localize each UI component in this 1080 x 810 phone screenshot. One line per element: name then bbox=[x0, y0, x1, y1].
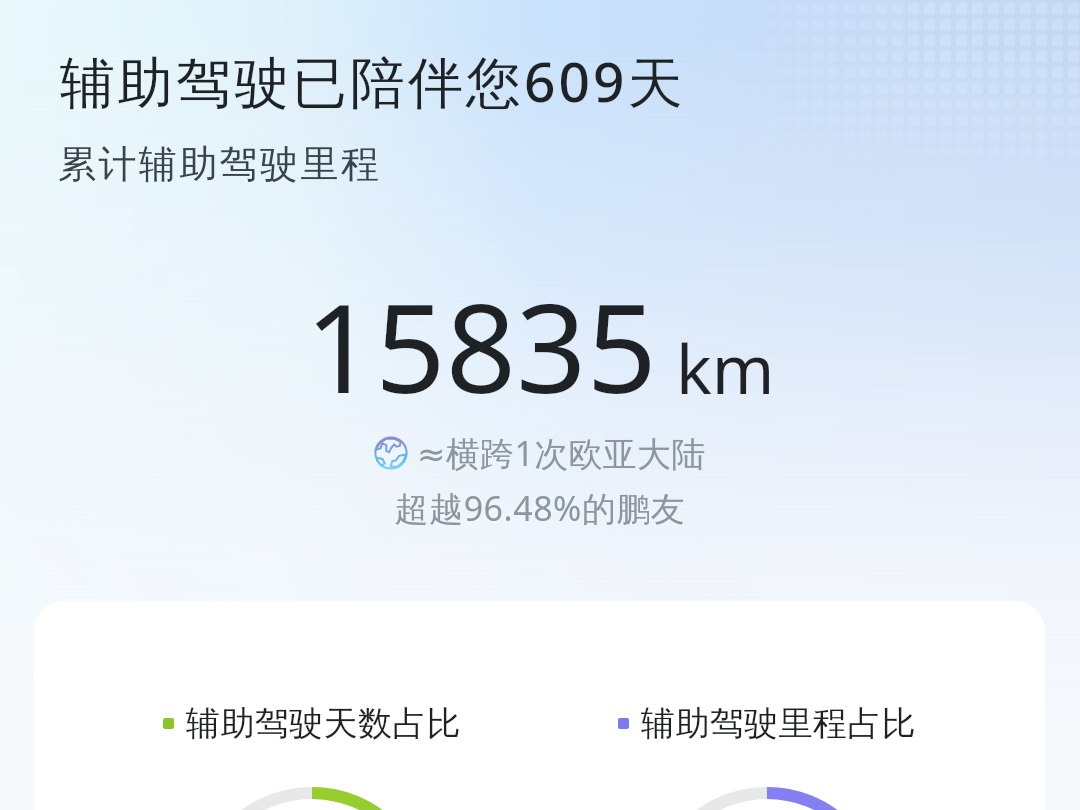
staticText: 辅助驾驶里程占比 bbox=[641, 702, 917, 745]
button[interactable]: 辅助驾驶里程占比 bbox=[618, 702, 917, 745]
staticText: 超越96.48%的鹏友 bbox=[0, 485, 1080, 531]
other: 辅助驾驶里程占比 bbox=[648, 787, 886, 810]
staticText: 辅助驾驶天数占比 bbox=[186, 702, 462, 745]
other: Globe bbox=[374, 436, 408, 470]
button[interactable] bbox=[34, 601, 539, 810]
staticText: 辅助驾驶已陪伴您609天 bbox=[60, 43, 686, 118]
button[interactable]: 辅助驾驶天数占比 bbox=[163, 702, 462, 745]
button[interactable] bbox=[539, 601, 1045, 810]
staticText: ≈横跨1次欧亚大陆 bbox=[417, 430, 706, 476]
staticText: km bbox=[676, 322, 775, 413]
staticText: 累计辅助驾驶里程 bbox=[58, 140, 382, 188]
other: 辅助驾驶天数占比 bbox=[193, 787, 431, 810]
staticText: 15835 bbox=[305, 262, 657, 430]
